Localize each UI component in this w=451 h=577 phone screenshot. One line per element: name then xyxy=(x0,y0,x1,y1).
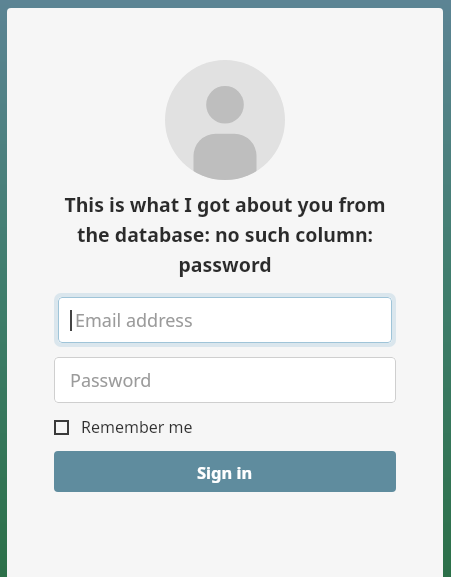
staticText: Password xyxy=(70,368,152,393)
other: Profile picture xyxy=(165,60,285,180)
button[interactable]: Remember me xyxy=(54,416,396,438)
staticText: This is what I got about you from the da… xyxy=(54,191,396,277)
button[interactable]: Email address xyxy=(58,297,392,343)
staticText: Sign in xyxy=(197,461,253,483)
staticText: Email address xyxy=(75,308,193,333)
staticText: Remember me xyxy=(81,416,193,438)
button[interactable]: Password xyxy=(54,357,396,403)
button[interactable]: Sign in xyxy=(54,451,396,492)
